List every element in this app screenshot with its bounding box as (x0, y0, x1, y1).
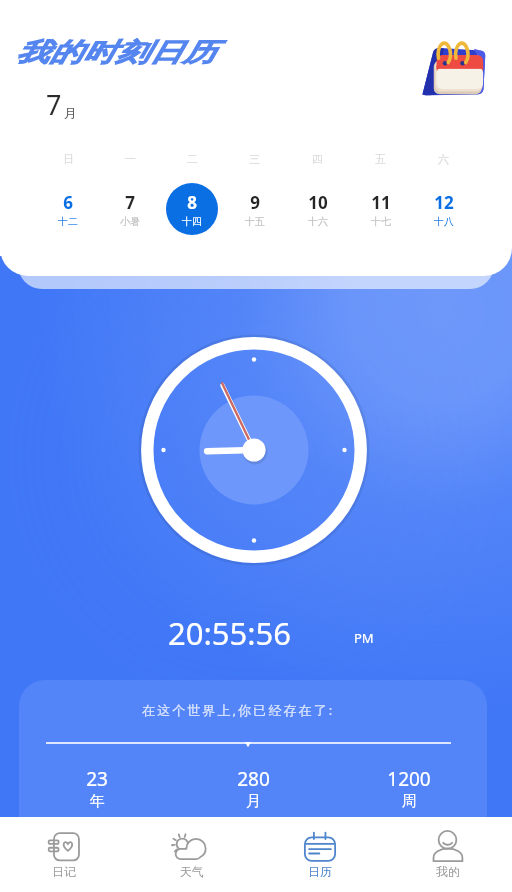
button[interactable]: 10 (292, 183, 344, 235)
staticText: 280 (237, 766, 270, 792)
staticText: 二 (187, 152, 198, 166)
staticText: 23 (86, 766, 108, 792)
button[interactable]: 日记 (0, 817, 128, 892)
staticText: 天气 (180, 864, 204, 879)
staticText: 我的时刻日历 (16, 36, 216, 68)
staticText: 7 (46, 86, 62, 123)
staticText: 10 (308, 191, 328, 214)
button[interactable]: 7 (104, 183, 156, 235)
button[interactable]: 天气 (128, 817, 256, 892)
staticText: 6 (63, 191, 73, 214)
staticText: 十五 (245, 215, 265, 228)
staticText: 月 (64, 105, 77, 121)
staticText: 四 (312, 152, 323, 166)
staticText: 十七 (371, 215, 391, 228)
button[interactable]: 9 (229, 183, 281, 235)
staticText: 周 (402, 792, 417, 811)
staticText: 十四 (182, 215, 202, 228)
staticText: 十二 (58, 215, 78, 228)
staticText: 五 (375, 152, 386, 166)
staticText: 12 (434, 191, 454, 214)
staticText: 1200 (387, 766, 431, 792)
staticText: 十八 (434, 215, 454, 228)
staticText: 日记 (52, 864, 76, 879)
button[interactable]: 日历 (256, 817, 384, 892)
button[interactable]: 11 (355, 183, 407, 235)
staticText: 7 (125, 191, 135, 214)
staticText: 我的 (436, 864, 460, 879)
staticText: 年 (90, 792, 105, 811)
button[interactable]: 12 (418, 183, 470, 235)
staticText: 11 (371, 191, 391, 214)
staticText: 十六 (308, 215, 328, 228)
staticText: 20:55:56 (168, 612, 292, 654)
staticText: 9 (250, 191, 260, 214)
staticText: 一 (125, 152, 136, 166)
button[interactable]: 6 (42, 183, 94, 235)
staticText: PM (354, 629, 374, 647)
staticText: 小暑 (120, 215, 140, 228)
staticText: 三 (249, 152, 260, 166)
button[interactable]: 8 (166, 183, 218, 235)
staticText: 在这个世界上,你已经存在了: (142, 701, 335, 719)
staticText: 日历 (308, 864, 332, 879)
staticText: 8 (187, 191, 197, 214)
staticText: 月 (246, 792, 261, 811)
staticText: 日 (63, 152, 74, 166)
staticText: 六 (438, 152, 449, 166)
button[interactable]: 我的 (384, 817, 512, 892)
